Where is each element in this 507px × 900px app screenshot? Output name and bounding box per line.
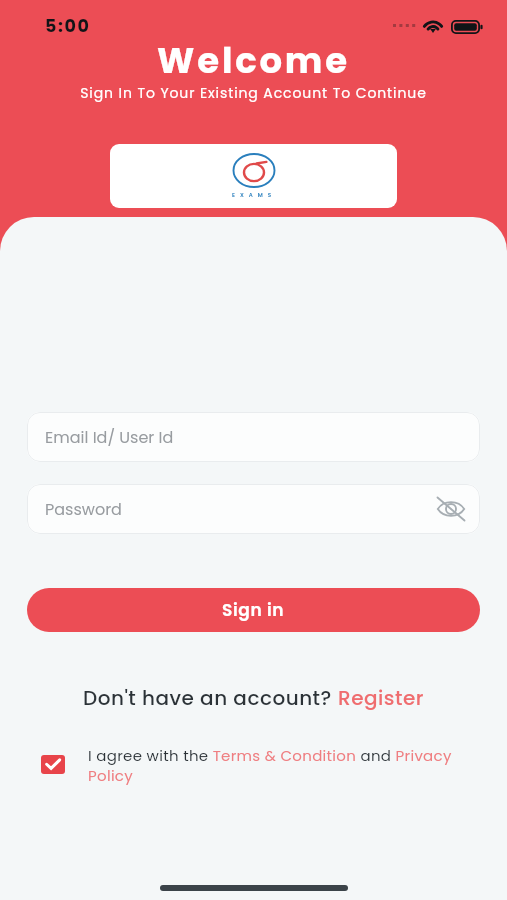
staticText: Welcome [0, 36, 507, 86]
button[interactable]: Email Id/ User Id [27, 412, 480, 462]
staticText: Don't have an account? [83, 684, 338, 712]
button[interactable]: Register [338, 684, 424, 712]
button[interactable]: Exams logo [110, 144, 397, 208]
button[interactable]: Sign in [27, 588, 480, 632]
other: Wi-Fi [422, 20, 444, 33]
staticText: 5:00 [45, 14, 91, 39]
staticText: Password [45, 498, 122, 520]
button[interactable]: I agree with the Terms & Condition and P… [88, 745, 460, 786]
staticText: Sign in [222, 598, 285, 622]
button[interactable]: Agree to terms and conditions [41, 755, 65, 774]
other: Battery [451, 20, 483, 34]
staticText: EXAMS [232, 191, 277, 199]
button[interactable]: Show password [436, 497, 466, 521]
staticText: Sign In To Your Existing Account To Cont… [0, 83, 507, 103]
staticText: Email Id/ User Id [45, 426, 174, 448]
button[interactable]: Password [27, 484, 480, 534]
